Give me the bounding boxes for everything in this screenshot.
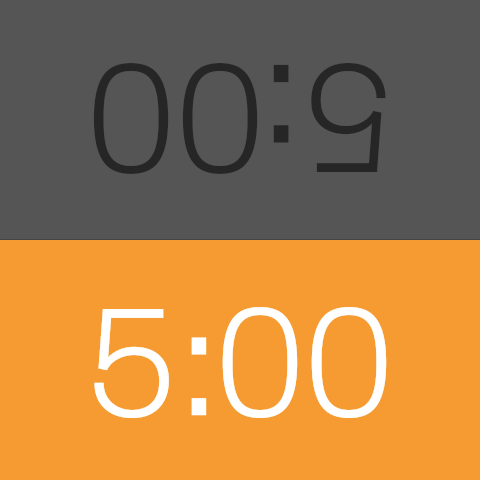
staticText: 5:00 xyxy=(86,32,394,202)
staticText: 5:00 xyxy=(86,279,394,449)
button[interactable]: Opponent clock, 5 minutes 0 seconds xyxy=(0,0,480,239)
button[interactable]: Your clock, 5 minutes 0 seconds xyxy=(0,240,480,480)
